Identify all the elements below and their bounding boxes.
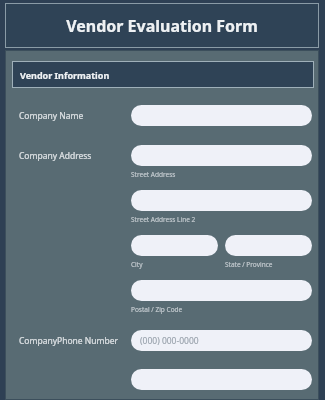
staticText: (000) 000-0000: [140, 335, 199, 347]
staticText: City: [131, 260, 143, 269]
staticText: Street Address Line 2: [131, 215, 196, 224]
staticText: Vendor Information: [20, 69, 110, 81]
button[interactable]: [131, 369, 312, 390]
button[interactable]: Vendor Information: [12, 61, 314, 88]
button[interactable]: (000) 000-0000: [131, 330, 312, 351]
button[interactable]: [131, 145, 312, 166]
staticText: Postal / Zip Code: [131, 305, 183, 314]
button[interactable]: [131, 280, 312, 301]
button[interactable]: [131, 105, 312, 126]
staticText: Vendor Evaluation Form: [66, 15, 258, 37]
staticText: Company Name: [19, 110, 131, 122]
staticText: State / Province: [225, 260, 273, 269]
button[interactable]: [131, 190, 312, 211]
staticText: Street Address: [131, 170, 176, 179]
staticText: Company Address: [19, 150, 92, 162]
button[interactable]: [131, 235, 218, 256]
staticText: CompanyPhone Number: [19, 335, 131, 347]
button[interactable]: [225, 235, 312, 256]
